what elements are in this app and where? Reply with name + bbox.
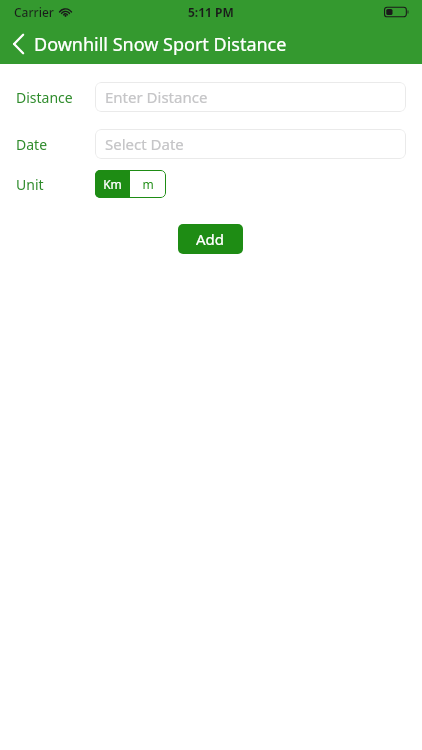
- staticText: m: [142, 176, 154, 192]
- staticText: 5:11 PM: [188, 4, 234, 20]
- staticText: Carrier: [14, 4, 54, 20]
- button[interactable]: m: [130, 170, 166, 198]
- staticText: Distance: [16, 88, 73, 107]
- staticText: Unit: [16, 175, 44, 194]
- staticText: Add: [196, 229, 225, 249]
- button[interactable]: Km: [95, 170, 130, 198]
- staticText: Enter Distance: [105, 87, 208, 107]
- button[interactable]: Enter Distance: [95, 82, 406, 112]
- staticText: Downhill Snow Sport Distance: [34, 32, 287, 57]
- staticText: Date: [16, 135, 48, 154]
- staticText: Km: [103, 176, 122, 192]
- staticText: Select Date: [105, 134, 184, 154]
- button[interactable]: Back: [2, 28, 34, 60]
- button[interactable]: Add: [178, 224, 243, 254]
- button[interactable]: Select Date: [95, 129, 406, 159]
